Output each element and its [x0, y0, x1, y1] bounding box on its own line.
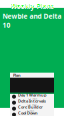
staticText: Day 1 Warmup: [18, 92, 47, 97]
staticText: 12 min: [27, 98, 37, 101]
staticText: Core Builder: [18, 104, 43, 109]
staticText: 18 min: [27, 104, 37, 107]
staticText: Weekly Plans: [10, 2, 53, 11]
staticText: Plan: [13, 72, 21, 78]
staticText: Delta Intervals: [18, 98, 46, 103]
staticText: Cool Down: [18, 110, 38, 115]
staticText: Newbie and Delta 10: [2, 12, 61, 30]
staticText: 9 min: [26, 110, 34, 113]
